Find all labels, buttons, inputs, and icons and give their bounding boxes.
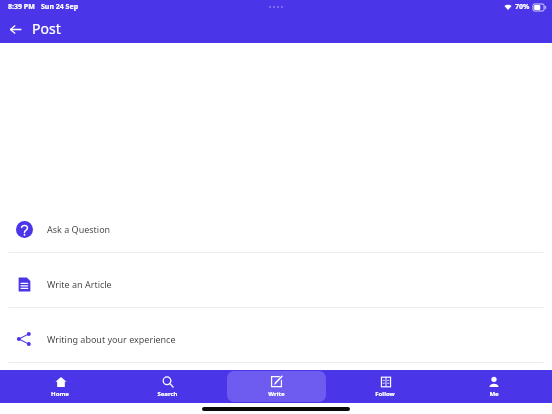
button[interactable]: Write an Article <box>5 260 547 308</box>
staticText: Me <box>489 390 499 398</box>
button[interactable]: Back <box>4 18 26 40</box>
staticText: Sun 24 Sep <box>41 2 79 12</box>
staticText: 70% <box>515 2 530 12</box>
staticText: Ask a Question <box>47 223 111 235</box>
button[interactable]: Ask a Question <box>5 205 547 253</box>
button[interactable]: Write <box>227 371 326 402</box>
staticText: Writing about your experience <box>47 333 176 345</box>
button[interactable]: Writing about your experience <box>5 315 547 363</box>
staticText: Post <box>32 19 61 38</box>
staticText: Write an Article <box>47 278 112 290</box>
button[interactable]: Follow <box>335 371 434 402</box>
button[interactable]: Home <box>10 371 109 402</box>
staticText: Search <box>157 390 178 398</box>
staticText: Write <box>268 390 285 398</box>
staticText: Follow <box>375 390 395 398</box>
staticText: 8:39 PM <box>8 2 35 12</box>
button[interactable]: Me <box>444 371 543 402</box>
button[interactable]: Search <box>118 371 217 402</box>
staticText: Home <box>51 390 69 398</box>
